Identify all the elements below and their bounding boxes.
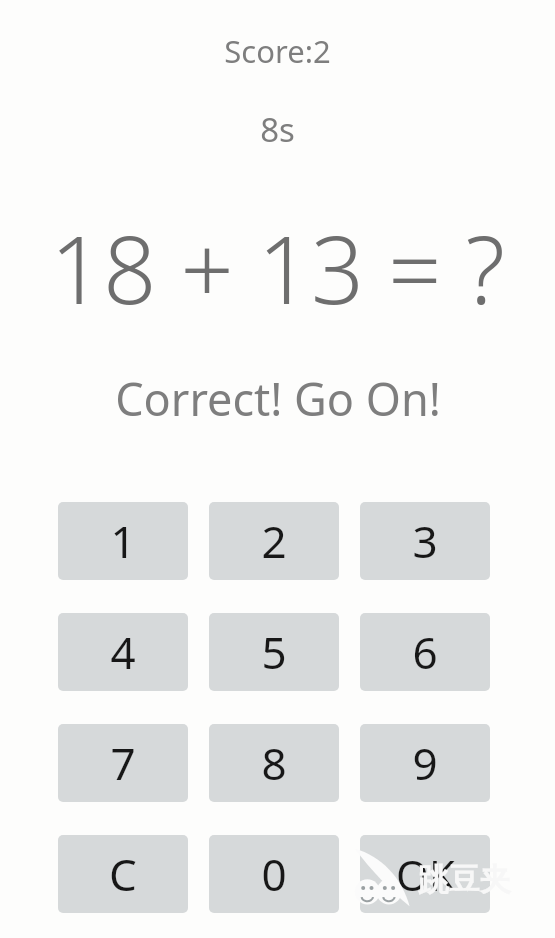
button[interactable]: 2 (209, 502, 339, 580)
staticText: 1 (110, 511, 136, 571)
staticText: 8 (261, 733, 287, 793)
button[interactable]: 1 (58, 502, 188, 580)
staticText: 2 (261, 511, 287, 571)
button[interactable]: 3 (360, 502, 490, 580)
button[interactable]: 8 (209, 724, 339, 802)
staticText: 7 (110, 733, 136, 793)
button[interactable]: OK (360, 835, 490, 913)
staticText: 5 (261, 622, 287, 682)
staticText: 4 (110, 622, 136, 682)
staticText: C (109, 844, 137, 904)
button[interactable]: 9 (360, 724, 490, 802)
staticText: 8s (260, 107, 295, 152)
staticText: 9 (412, 733, 438, 793)
button[interactable]: 0 (209, 835, 339, 913)
staticText: 18 + 13 = ? (50, 205, 505, 332)
staticText: Correct! Go On! (115, 368, 441, 429)
staticText: Score:2 (224, 30, 331, 72)
other: Watermark (352, 840, 448, 912)
button[interactable]: 7 (58, 724, 188, 802)
button[interactable]: C (58, 835, 188, 913)
staticText: 3 (412, 511, 438, 571)
button[interactable]: 5 (209, 613, 339, 691)
button[interactable]: 4 (58, 613, 188, 691)
staticText: 跳豆夹 (418, 860, 511, 899)
staticText: 0 (261, 844, 287, 904)
button[interactable]: 6 (360, 613, 490, 691)
staticText: OK (396, 846, 455, 903)
staticText: 6 (412, 622, 438, 682)
